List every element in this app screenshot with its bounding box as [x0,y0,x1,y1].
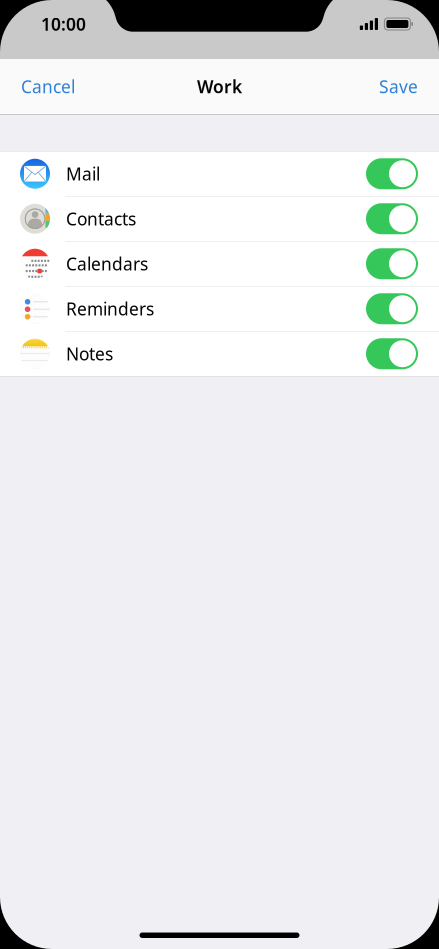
staticText: Calendars [66,252,148,275]
staticText: Notes [66,342,113,365]
staticText: Work [197,75,242,98]
button[interactable]: Calendars [0,241,439,286]
staticText: Reminders [66,297,154,320]
staticText: 10:00 [41,12,86,35]
staticText: Save [379,75,418,98]
staticText: Mail [66,162,100,185]
button[interactable]: Save [363,64,439,108]
staticText: Contacts [66,207,136,230]
button[interactable]: Notes [0,331,439,376]
button[interactable]: Mail [0,151,439,196]
staticText: Cancel [21,75,75,98]
button[interactable]: Cancel [0,64,91,108]
button[interactable]: Contacts [0,196,439,241]
button[interactable]: Reminders [0,286,439,331]
